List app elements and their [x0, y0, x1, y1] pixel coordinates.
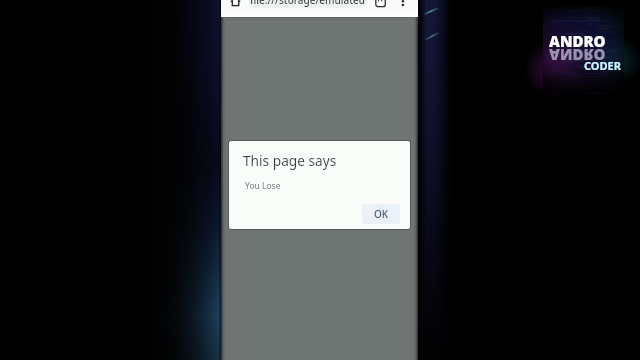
button[interactable]: file:///storage/emulated: [248, 0, 367, 8]
staticText: CODER: [584, 58, 621, 73]
staticText: This page says: [243, 151, 337, 170]
button[interactable]: OK: [362, 204, 400, 224]
staticText: ANDRO: [549, 31, 606, 51]
staticText: You Lose: [245, 180, 281, 192]
button[interactable]: More options: [399, 0, 409, 8]
staticText: file:///storage/emulated: [250, 0, 365, 7]
staticText: ANDRO: [549, 45, 606, 65]
button[interactable]: Tabs: [373, 0, 385, 8]
button[interactable]: Home: [228, 0, 240, 8]
staticText: OK: [374, 207, 389, 221]
